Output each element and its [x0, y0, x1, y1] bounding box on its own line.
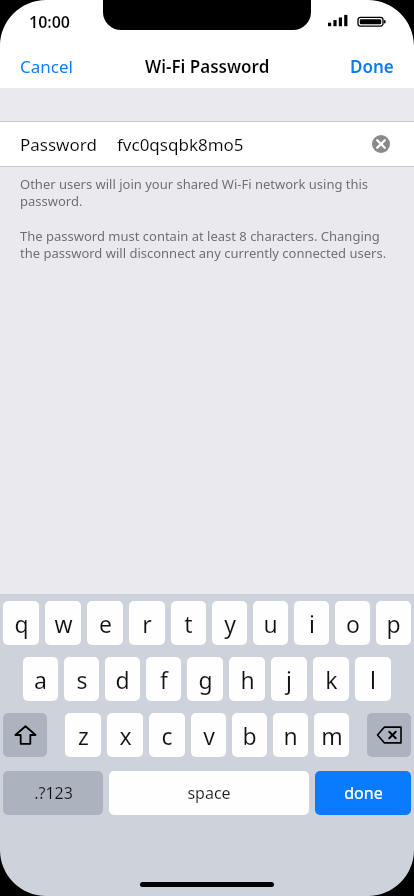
staticText: n	[283, 720, 298, 751]
staticText: g	[198, 664, 213, 695]
staticText: The password must contain at least 8 cha…	[20, 227, 394, 262]
button[interactable]: a	[23, 657, 58, 701]
staticText: d	[115, 664, 130, 695]
button[interactable]: c	[149, 713, 185, 757]
staticText: done	[344, 782, 383, 804]
staticText: c	[161, 720, 173, 751]
button[interactable]: f	[146, 657, 181, 701]
staticText: v	[203, 720, 215, 751]
staticText: f	[160, 664, 168, 695]
staticText: fvc0qsqbk8mo5	[117, 133, 244, 156]
button[interactable]: .?123	[3, 771, 103, 815]
button[interactable]: x	[107, 713, 143, 757]
button[interactable]: Clear text	[372, 135, 390, 153]
button[interactable]: u	[253, 601, 288, 645]
button[interactable]: done	[315, 771, 411, 815]
staticText: 10:00	[29, 11, 71, 33]
button[interactable]: p	[376, 601, 411, 645]
staticText: Other users will join your shared Wi-Fi …	[20, 175, 394, 210]
button[interactable]: Cancel	[0, 44, 93, 88]
button[interactable]: Backspace	[367, 713, 411, 757]
button[interactable]: b	[232, 713, 267, 757]
button[interactable]: g	[187, 657, 223, 701]
button[interactable]: e	[87, 601, 123, 645]
staticText: Cancel	[20, 55, 73, 78]
staticText: r	[142, 608, 152, 639]
button[interactable]: j	[271, 657, 307, 701]
staticText: z	[78, 720, 89, 751]
staticText: l	[370, 664, 376, 695]
button[interactable]: h	[229, 657, 265, 701]
staticText: p	[386, 608, 401, 639]
staticText: x	[119, 720, 132, 751]
staticText: b	[242, 720, 257, 751]
staticText: i	[309, 608, 315, 639]
button[interactable]: y	[212, 601, 247, 645]
button[interactable]: d	[105, 657, 140, 701]
staticText: s	[76, 664, 88, 695]
staticText: a	[34, 664, 47, 695]
button[interactable]: m	[314, 713, 349, 757]
button[interactable]: Done	[330, 44, 414, 88]
button[interactable]: q	[3, 601, 39, 645]
button[interactable]: o	[335, 601, 370, 645]
button[interactable]: n	[273, 713, 308, 757]
button[interactable]: z	[65, 713, 101, 757]
button[interactable]: Shift	[3, 713, 47, 757]
staticText: m	[321, 720, 343, 751]
staticText: q	[14, 608, 29, 639]
button[interactable]: w	[45, 601, 81, 645]
button[interactable]: v	[191, 713, 226, 757]
staticText: u	[263, 608, 278, 639]
button[interactable]: k	[313, 657, 349, 701]
staticText: Done	[350, 55, 394, 78]
staticText: h	[240, 664, 255, 695]
button[interactable]: t	[171, 601, 206, 645]
button[interactable]: l	[355, 657, 391, 701]
button[interactable]: s	[64, 657, 99, 701]
staticText: space	[187, 782, 231, 804]
button[interactable]: i	[294, 601, 329, 645]
staticText: j	[286, 664, 292, 695]
staticText: k	[325, 664, 338, 695]
staticText: w	[54, 608, 73, 639]
staticText: o	[346, 608, 360, 639]
staticText: .?123	[34, 782, 73, 804]
button[interactable]: r	[129, 601, 165, 645]
staticText: Password	[20, 133, 97, 156]
staticText: e	[99, 608, 112, 639]
staticText: y	[224, 608, 236, 639]
staticText: t	[184, 608, 193, 639]
button[interactable]: space	[109, 771, 309, 815]
staticText: Wi-Fi Password	[145, 55, 270, 78]
button[interactable]: Password	[0, 122, 414, 166]
